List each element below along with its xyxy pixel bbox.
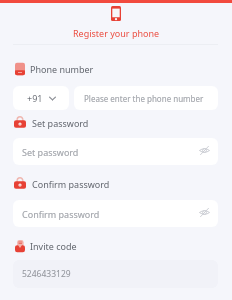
staticText: Invite code — [30, 240, 77, 252]
staticText: Phone number — [30, 63, 94, 75]
button[interactable]: Confirm password — [13, 200, 218, 227]
button[interactable]: 5246433129 — [13, 260, 218, 288]
staticText: Confirm password — [32, 178, 110, 190]
other: Show password — [199, 207, 210, 218]
staticText: Confirm password — [22, 208, 199, 220]
button[interactable]: +91 — [13, 86, 69, 110]
staticText: Register your phone — [73, 27, 160, 39]
staticText: Set password — [22, 146, 199, 158]
staticText: Set password — [32, 117, 89, 129]
staticText: 5246433129 — [22, 268, 71, 280]
staticText: Please enter the phone number — [84, 93, 204, 104]
other: Show password — [199, 145, 210, 156]
staticText: +91 — [27, 92, 43, 104]
button[interactable]: Please enter the phone number — [74, 86, 218, 110]
button[interactable]: Set password — [13, 138, 218, 165]
